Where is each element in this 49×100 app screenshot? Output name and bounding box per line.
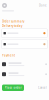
- button[interactable]: Place order: [2, 84, 24, 91]
- staticText: Cancel: [38, 86, 47, 89]
- staticText: Delivery today: [2, 24, 22, 28]
- button[interactable]: Done: [39, 4, 47, 7]
- staticText: Done: [39, 4, 47, 7]
- staticText: Order summary: [2, 20, 24, 23]
- button[interactable]: Cancel: [38, 86, 47, 89]
- button[interactable]: [1, 40, 47, 49]
- button[interactable]: [1, 29, 47, 38]
- staticText: Payment: [2, 54, 15, 57]
- button[interactable]: [0, 60, 49, 68]
- staticText: Place order: [4, 86, 21, 89]
- button[interactable]: Profile: [2, 3, 7, 8]
- button[interactable]: [0, 70, 49, 78]
